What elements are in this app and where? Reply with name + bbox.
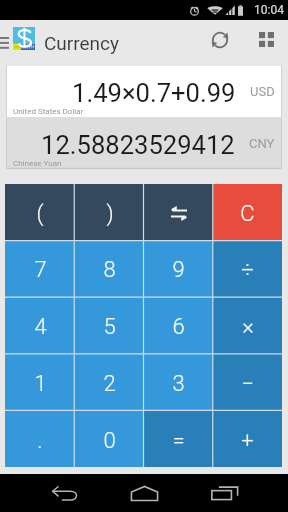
button[interactable]: Home <box>104 474 184 512</box>
staticText: 6 <box>172 314 185 340</box>
staticText: 3 <box>172 371 185 397</box>
staticText: 12.58823529412 <box>41 130 235 160</box>
button[interactable]: 6 <box>144 296 213 353</box>
button[interactable]: 0 <box>75 410 144 467</box>
button[interactable]: ) <box>75 184 144 240</box>
staticText: ÷ <box>241 257 254 283</box>
button[interactable]: Refresh exchange rates <box>199 20 245 65</box>
staticText: − <box>241 371 254 397</box>
button[interactable]: C <box>213 184 282 240</box>
button[interactable]: 3 <box>144 353 213 410</box>
button[interactable]: × <box>213 296 282 353</box>
staticText: = <box>172 428 185 454</box>
staticText: 2 <box>103 371 116 397</box>
staticText: ) <box>106 201 114 227</box>
button[interactable]: 8 <box>75 240 144 296</box>
button[interactable]: 12.58823529412 <box>7 117 281 169</box>
staticText: ( <box>36 201 44 227</box>
button[interactable]: Show currency grid <box>245 20 288 65</box>
staticText: 9 <box>172 257 185 283</box>
staticText: + <box>241 428 254 454</box>
staticText: 5 <box>103 314 116 340</box>
staticText: 4 <box>34 314 47 340</box>
staticText: United States Dollar <box>13 107 84 116</box>
button[interactable]: Back <box>12 474 92 512</box>
staticText: 1.49×0.7+0.99 <box>72 78 236 108</box>
button[interactable]: Open navigation drawer <box>0 20 37 65</box>
button[interactable]: − <box>213 353 282 410</box>
button[interactable]: 2 <box>75 353 144 410</box>
staticText: Chinese Yuan <box>13 159 62 168</box>
staticText: 7 <box>34 257 47 283</box>
button[interactable]: Swap currencies <box>144 184 213 240</box>
staticText: C <box>240 201 255 227</box>
staticText: . <box>37 428 43 454</box>
staticText: 0 <box>103 428 116 454</box>
staticText: 10:04 <box>254 3 284 17</box>
staticText: CNY <box>249 136 275 151</box>
staticText: Currency <box>44 32 120 54</box>
staticText: USD <box>250 84 275 99</box>
button[interactable]: . <box>5 410 75 467</box>
staticText: 1 <box>34 371 47 397</box>
button[interactable]: 5 <box>75 296 144 353</box>
button[interactable]: + <box>213 410 282 467</box>
button[interactable]: ÷ <box>213 240 282 296</box>
button[interactable]: 1.49×0.7+0.99 <box>7 65 281 117</box>
button[interactable]: 1 <box>5 353 75 410</box>
button[interactable]: 4 <box>5 296 75 353</box>
button[interactable]: 9 <box>144 240 213 296</box>
staticText: × <box>242 314 254 340</box>
button[interactable]: ( <box>5 184 75 240</box>
staticText: 8 <box>103 257 116 283</box>
button[interactable]: = <box>144 410 213 467</box>
button[interactable]: Recent apps <box>196 474 276 512</box>
button[interactable]: 7 <box>5 240 75 296</box>
